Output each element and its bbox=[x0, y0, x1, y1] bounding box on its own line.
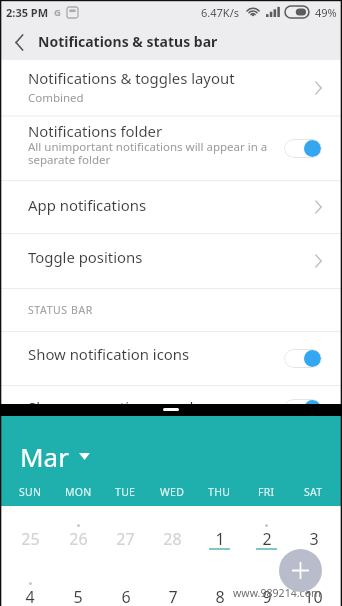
button[interactable]: App notifications bbox=[0, 180, 342, 233]
button[interactable]: Show notification icons bbox=[0, 331, 342, 385]
staticText: 28 bbox=[163, 528, 182, 550]
button[interactable]: 1 bbox=[196, 506, 243, 564]
button[interactable]: 27 bbox=[102, 506, 149, 564]
button[interactable]: 5 bbox=[54, 564, 102, 606]
staticText: SAT bbox=[304, 485, 323, 499]
staticText: SUN bbox=[19, 485, 42, 499]
button[interactable]: Show connection speed bbox=[0, 385, 342, 432]
staticText: 6 bbox=[121, 586, 131, 606]
staticText: 2:35 PM bbox=[6, 5, 49, 20]
staticText: 9 bbox=[262, 586, 272, 606]
staticText: Notifications & status bar bbox=[38, 32, 218, 51]
staticText: 27 bbox=[116, 528, 135, 550]
button[interactable]: 10 bbox=[290, 564, 337, 606]
button[interactable]: Toggle bbox=[284, 399, 322, 418]
button[interactable]: 26 bbox=[54, 506, 102, 564]
button[interactable]: 28 bbox=[149, 506, 196, 564]
staticText: 8 bbox=[215, 586, 225, 606]
staticText: 49% bbox=[315, 5, 337, 20]
staticText: Show notification icons bbox=[28, 344, 190, 364]
button[interactable]: 25 bbox=[6, 506, 54, 564]
staticText: FRI bbox=[258, 485, 275, 499]
staticText: Toggle positions bbox=[28, 247, 143, 267]
staticText: www.989214.com bbox=[233, 586, 321, 600]
staticText: 4 bbox=[25, 586, 35, 606]
staticText: 6.47K/s bbox=[201, 5, 239, 20]
button[interactable]: 8 bbox=[196, 564, 243, 606]
staticText: TUE bbox=[115, 485, 136, 499]
button[interactable]: 9 bbox=[243, 564, 290, 606]
staticText: Mar bbox=[20, 439, 69, 474]
staticText: Notifications folder bbox=[28, 121, 163, 141]
staticText: 10 bbox=[304, 586, 323, 606]
button[interactable]: 7 bbox=[149, 564, 196, 606]
staticText: Notifications & toggles layout bbox=[28, 68, 235, 88]
button[interactable]: Back bbox=[0, 24, 38, 60]
button[interactable]: 2 bbox=[243, 506, 290, 564]
staticText: 25 bbox=[21, 528, 40, 550]
button[interactable]: Toggle bbox=[284, 139, 322, 158]
button[interactable]: 4 bbox=[6, 564, 54, 606]
staticText: 7 bbox=[168, 586, 178, 606]
staticText: MON bbox=[65, 485, 92, 499]
staticText: 26 bbox=[69, 528, 88, 550]
button[interactable]: 3 bbox=[290, 506, 337, 564]
button[interactable]: Toggle bbox=[284, 349, 322, 368]
staticText: 5 bbox=[73, 586, 83, 606]
staticText: 1 bbox=[215, 528, 225, 550]
staticText: WED bbox=[160, 485, 185, 499]
staticText: G bbox=[54, 6, 61, 19]
staticText: 3 bbox=[309, 528, 319, 550]
button[interactable]: Notifications folder bbox=[0, 116, 342, 181]
button[interactable]: Add event bbox=[279, 549, 322, 592]
staticText: All unimportant notifications will appea… bbox=[28, 139, 268, 167]
staticText: Combined bbox=[28, 90, 84, 106]
button[interactable]: Notifications & toggles layout bbox=[0, 60, 342, 116]
button[interactable]: Mar bbox=[20, 439, 90, 474]
staticText: 2 bbox=[262, 528, 272, 550]
button[interactable]: 6 bbox=[102, 564, 149, 606]
button[interactable]: Toggle positions bbox=[0, 233, 342, 288]
staticText: STATUS BAR bbox=[28, 303, 93, 317]
staticText: THU bbox=[208, 485, 231, 499]
staticText: Show connection speed bbox=[28, 397, 194, 417]
staticText: App notifications bbox=[28, 195, 147, 215]
